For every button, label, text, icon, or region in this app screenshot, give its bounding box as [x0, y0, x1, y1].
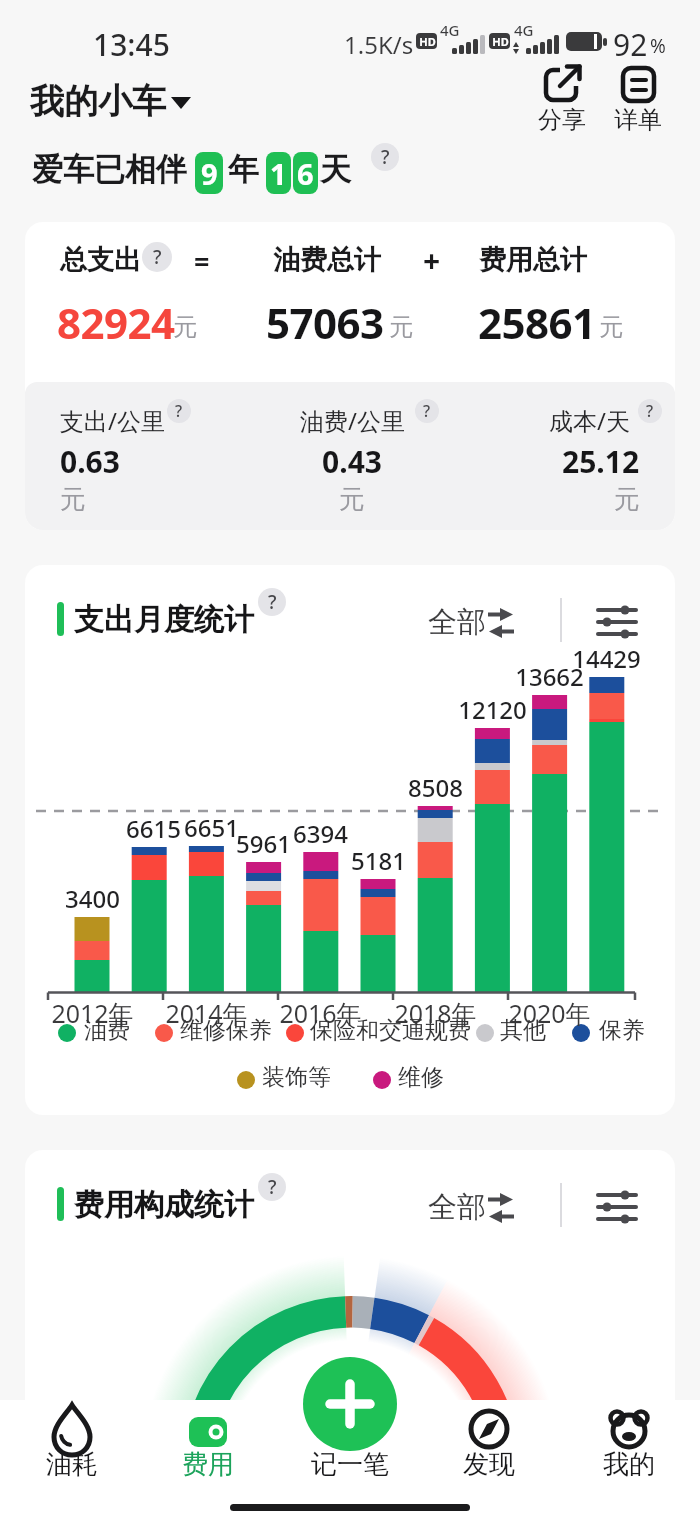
- button[interactable]: [22, 1402, 122, 1492]
- button[interactable]: [420, 595, 520, 645]
- staticText: 6615: [126, 812, 181, 845]
- staticText: 12120: [458, 693, 527, 726]
- staticText: 爱车已相伴: [32, 150, 187, 189]
- staticText: ?: [153, 244, 162, 270]
- button[interactable]: [303, 1357, 397, 1451]
- staticText: 元: [614, 483, 640, 516]
- staticText: 9: [201, 154, 218, 193]
- staticText: 年: [228, 150, 259, 189]
- staticText: 元: [173, 312, 197, 342]
- staticText: 13:45: [93, 24, 170, 65]
- staticText: ?: [268, 589, 277, 615]
- staticText: 油费总计: [273, 243, 381, 277]
- staticText: 13662: [515, 660, 584, 693]
- staticText: 元: [389, 312, 413, 342]
- staticText: 全部: [428, 1189, 486, 1226]
- staticText: 5961: [236, 827, 291, 860]
- staticText: 我的小车: [30, 80, 166, 123]
- staticText: 费用构成统计: [74, 1186, 254, 1224]
- staticText: 6: [297, 154, 314, 193]
- button[interactable]: [439, 1402, 539, 1492]
- staticText: 8508: [408, 771, 463, 804]
- staticText: 0.63: [60, 441, 120, 482]
- button[interactable]: [614, 64, 662, 140]
- staticText: 2012年: [51, 996, 134, 1030]
- staticText: +: [423, 240, 441, 281]
- staticText: 支出/公里: [60, 404, 165, 437]
- button[interactable]: [579, 1402, 679, 1492]
- staticText: 发现: [463, 1448, 515, 1481]
- staticText: 分享: [538, 105, 586, 135]
- staticText: 我的: [603, 1448, 655, 1481]
- button[interactable]: [540, 64, 588, 140]
- staticText: ?: [423, 400, 431, 422]
- staticText: 维修保养: [180, 1016, 272, 1045]
- staticText: 全部: [428, 604, 486, 641]
- staticText: 25861: [478, 294, 596, 351]
- staticText: HD: [492, 34, 509, 49]
- staticText: 2016年: [279, 996, 362, 1030]
- staticText: 油耗: [46, 1448, 98, 1481]
- button[interactable]: [590, 595, 646, 645]
- staticText: 元: [599, 312, 623, 342]
- button[interactable]: [590, 1180, 646, 1230]
- staticText: 25.12: [562, 441, 640, 482]
- staticText: 0.43: [322, 441, 382, 482]
- staticText: 费用: [182, 1448, 234, 1481]
- staticText: 元: [60, 483, 86, 516]
- staticText: =: [194, 243, 210, 280]
- staticText: 成本/天: [549, 404, 630, 437]
- staticText: 装饰等: [262, 1063, 331, 1092]
- staticText: %: [650, 33, 666, 59]
- staticText: 3400: [65, 882, 120, 915]
- staticText: 油费/公里: [300, 404, 405, 437]
- staticText: 详单: [614, 105, 662, 135]
- staticText: 14429: [572, 642, 641, 675]
- staticText: 57063: [266, 294, 384, 351]
- staticText: 天: [320, 150, 351, 189]
- staticText: 其他: [500, 1016, 546, 1045]
- staticText: ?: [175, 400, 183, 422]
- staticText: 82924: [57, 294, 175, 351]
- button[interactable]: [420, 1180, 520, 1230]
- staticText: 6651: [184, 811, 239, 844]
- staticText: 元: [339, 483, 365, 516]
- staticText: 支出月度统计: [74, 601, 254, 639]
- staticText: 4G: [440, 20, 460, 40]
- staticText: ?: [268, 1174, 277, 1200]
- staticText: HD: [419, 34, 436, 49]
- staticText: ?: [646, 400, 654, 422]
- staticText: 1: [270, 154, 287, 193]
- staticText: ?: [381, 144, 390, 170]
- staticText: 保险和交通规费: [310, 1016, 471, 1045]
- staticText: 2020年: [508, 996, 591, 1030]
- staticText: 油费: [84, 1016, 130, 1045]
- staticText: 2014年: [165, 996, 248, 1030]
- staticText: 费用总计: [479, 243, 587, 277]
- staticText: 总支出: [60, 243, 141, 277]
- staticText: 记一笔: [311, 1448, 389, 1481]
- staticText: 92: [613, 24, 648, 65]
- staticText: 1.5K/s: [344, 28, 414, 61]
- staticText: 维修: [398, 1063, 444, 1092]
- staticText: 保养: [599, 1016, 645, 1045]
- staticText: 2018年: [394, 996, 477, 1030]
- staticText: 4G: [514, 20, 534, 40]
- staticText: 5181: [351, 844, 406, 877]
- button[interactable]: [158, 1402, 258, 1492]
- staticText: 6394: [293, 817, 348, 850]
